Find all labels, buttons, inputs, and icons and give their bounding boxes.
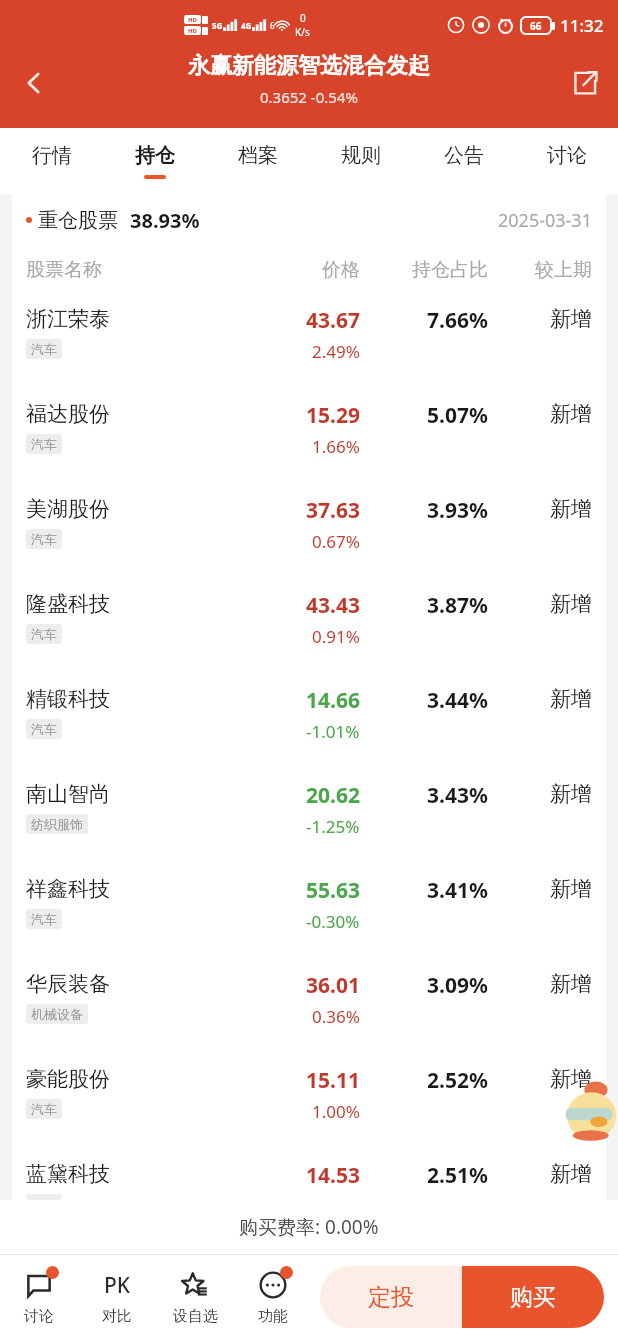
staticText: 14.66 — [306, 686, 360, 715]
staticText: 汽车 — [31, 626, 57, 642]
button[interactable]: 华辰装备 — [12, 959, 606, 1054]
staticText: 3.44% — [427, 686, 488, 715]
staticText: 1.00% — [312, 1100, 360, 1123]
staticText: 华辰装备 — [26, 971, 110, 997]
staticText: 汽车 — [31, 911, 57, 927]
staticText: 3.43% — [427, 781, 488, 810]
staticText: 重仓股票 — [38, 208, 118, 233]
staticText: 新增 — [550, 496, 592, 522]
button[interactable]: PK — [78, 1255, 156, 1338]
staticText: 档案 — [238, 143, 278, 168]
staticText: -1.01% — [306, 720, 360, 743]
staticText: 福达股份 — [26, 401, 110, 427]
staticText: 新增 — [550, 401, 592, 427]
staticText: 机械设备 — [31, 1006, 83, 1022]
staticText: 6 — [270, 20, 275, 31]
staticText: 0.36% — [312, 1005, 360, 1028]
button[interactable]: Assistant — [560, 1080, 618, 1156]
staticText: 20.62 — [306, 781, 360, 810]
staticText: 37.63 — [306, 496, 360, 525]
button[interactable]: 规则 — [309, 128, 412, 194]
staticText: 5.07% — [427, 401, 488, 430]
staticText: 讨论 — [547, 143, 587, 168]
staticText: 新增 — [550, 591, 592, 617]
staticText: 3.09% — [427, 971, 488, 1000]
button[interactable]: 福达股份 — [12, 389, 606, 484]
staticText: 购买费率: 0.00% — [239, 1214, 379, 1240]
staticText: 7.66% — [427, 306, 488, 335]
staticText: 对比 — [102, 1307, 132, 1326]
staticText: 1.66% — [312, 435, 360, 458]
staticText: 新增 — [550, 1161, 592, 1187]
staticText: 11:32 — [560, 14, 604, 37]
staticText: 43.43 — [306, 591, 360, 620]
staticText: 纺织服饰 — [31, 816, 83, 832]
staticText: 38.93% — [130, 207, 200, 234]
staticText: PK — [104, 1271, 131, 1300]
staticText: 定投 — [368, 1283, 414, 1312]
staticText: 美湖股份 — [26, 496, 110, 522]
button[interactable]: 公告 — [412, 128, 515, 194]
button[interactable]: 讨论 — [515, 128, 618, 194]
staticText: 汽车 — [31, 341, 57, 357]
staticText: 55.63 — [306, 876, 360, 905]
staticText: 新增 — [550, 781, 592, 807]
button[interactable]: 浙江荣泰 — [12, 294, 606, 389]
staticText: 0 — [300, 11, 306, 25]
button[interactable]: 南山智尚 — [12, 769, 606, 864]
button[interactable]: 隆盛科技 — [12, 579, 606, 674]
staticText: -1.25% — [306, 815, 360, 838]
staticText: HD — [188, 27, 197, 35]
staticText: 讨论 — [24, 1307, 54, 1326]
staticText: 15.11 — [306, 1066, 360, 1095]
staticText: 股票名称 — [26, 258, 250, 282]
staticText: 设自选 — [173, 1307, 218, 1326]
staticText: 较上期 — [488, 258, 592, 282]
staticText: 3.41% — [427, 876, 488, 905]
button[interactable]: 功能 — [234, 1255, 312, 1338]
staticText: 汽车 — [31, 721, 57, 737]
staticText: 汽车 — [31, 1101, 57, 1117]
button[interactable]: 祥鑫科技 — [12, 864, 606, 959]
staticText: 2.52% — [427, 1066, 488, 1095]
staticText: 隆盛科技 — [26, 591, 110, 617]
button[interactable]: Back — [0, 52, 68, 114]
staticText: 精锻科技 — [26, 686, 110, 712]
staticText: 新增 — [550, 1066, 592, 1092]
staticText: 行情 — [32, 143, 72, 168]
staticText: 新增 — [550, 306, 592, 332]
staticText: 公告 — [444, 143, 484, 168]
button[interactable]: 精锻科技 — [12, 674, 606, 769]
staticText: 功能 — [258, 1307, 288, 1326]
staticText: 15.29 — [306, 401, 360, 430]
staticText: 2025-03-31 — [498, 208, 592, 233]
button[interactable]: 蓝黛科技 — [12, 1149, 606, 1200]
staticText: 持仓 — [135, 143, 175, 168]
button[interactable]: 讨论 — [0, 1255, 78, 1338]
staticText: 5G — [212, 20, 223, 31]
staticText: 浙江荣泰 — [26, 306, 110, 332]
staticText: 豪能股份 — [26, 1066, 110, 1092]
button[interactable]: 设自选 — [156, 1255, 234, 1338]
staticText: 规则 — [341, 143, 381, 168]
staticText: 3.87% — [427, 591, 488, 620]
button[interactable]: 定投 — [320, 1266, 462, 1328]
staticText: 汽车 — [31, 531, 57, 547]
staticText: 持仓占比 — [360, 258, 488, 282]
button[interactable]: 购买 — [462, 1266, 604, 1328]
staticText: 新增 — [550, 971, 592, 997]
staticText: 购买 — [510, 1283, 556, 1312]
staticText: 36.01 — [306, 971, 360, 1000]
button[interactable]: Share — [552, 52, 618, 114]
button[interactable]: 档案 — [206, 128, 309, 194]
button[interactable]: 豪能股份 — [12, 1054, 606, 1149]
button[interactable]: 持仓 — [103, 128, 206, 194]
staticText: 2.51% — [427, 1161, 488, 1190]
staticText: 0.3652 -0.54% — [260, 87, 358, 107]
staticText: 蓝黛科技 — [26, 1161, 110, 1187]
button[interactable]: 美湖股份 — [12, 484, 606, 579]
staticText: 永赢新能源智选混合发起 — [188, 52, 430, 80]
staticText: 2.49% — [312, 340, 360, 363]
button[interactable]: 行情 — [0, 128, 103, 194]
